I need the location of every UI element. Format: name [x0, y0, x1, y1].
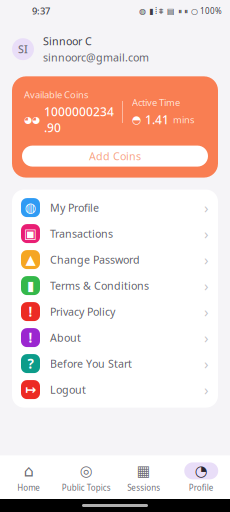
staticText: Transactions — [50, 226, 113, 241]
button[interactable]: ! — [12, 325, 218, 351]
staticText: › — [204, 328, 209, 347]
staticText: Sinnoor C — [43, 34, 92, 48]
staticText: Terms & Conditions — [50, 278, 149, 293]
button[interactable]: ◔ — [172, 462, 230, 493]
button[interactable]: ◎ — [57, 462, 115, 493]
button[interactable]: ↦ — [12, 377, 218, 403]
button[interactable]: ▣ — [12, 221, 218, 247]
staticText: Available Coins — [24, 88, 88, 101]
staticText: › — [204, 380, 209, 399]
staticText: My Profile — [50, 200, 99, 215]
staticText: › — [204, 198, 209, 217]
staticText: › — [204, 354, 209, 373]
staticText: 1000000234.90 — [44, 104, 114, 136]
button[interactable]: ▮ — [12, 273, 218, 299]
staticText: ◎ — [80, 463, 93, 479]
staticText: ⌂ — [24, 462, 34, 480]
staticText: ▦ — [137, 463, 151, 479]
staticText: Profile — [189, 482, 214, 493]
staticText: SI — [18, 42, 28, 56]
button[interactable]: ? — [12, 351, 218, 377]
button[interactable]: Add Coins — [22, 146, 208, 167]
staticText: Before You Start — [50, 356, 132, 371]
staticText: ▲ — [25, 252, 35, 267]
staticText: 1.41 — [145, 112, 169, 128]
staticText: Add Coins — [89, 149, 141, 163]
button[interactable]: ▦ — [115, 462, 172, 493]
staticText: ! — [28, 303, 32, 320]
staticText: Public Topics — [62, 482, 111, 493]
staticText: mins — [173, 113, 194, 126]
staticText: ▮ — [27, 278, 34, 293]
staticText: ▣ — [24, 226, 37, 241]
staticText: Sessions — [127, 482, 160, 493]
staticText: sinnoorc@gmail.com — [43, 50, 149, 64]
staticText: ◍ ▮ ⁞ ⩨ ▤ ⏸ ⏸ ○ 100% — [139, 6, 222, 16]
staticText: ? — [27, 355, 33, 372]
staticText: Change Password — [50, 252, 140, 267]
staticText: Active Time — [132, 96, 180, 109]
staticText: › — [204, 276, 209, 295]
staticText: › — [204, 250, 209, 269]
staticText: Privacy Policy — [50, 304, 115, 319]
staticText: 9:37 — [32, 5, 50, 17]
staticText: Logout — [50, 382, 86, 397]
staticText: ↦ — [25, 382, 36, 397]
staticText: ◔ — [195, 463, 208, 479]
button[interactable]: ◍ — [12, 195, 218, 221]
staticText: ◓ — [132, 114, 141, 126]
staticText: About — [50, 330, 81, 345]
button[interactable]: ▲ — [12, 247, 218, 273]
button[interactable]: ⌂ — [0, 462, 57, 493]
staticText: Home — [17, 482, 40, 493]
staticText: › — [204, 224, 209, 243]
staticText: ! — [28, 329, 32, 346]
staticText: › — [204, 302, 209, 321]
staticText: ◕◕ — [24, 114, 40, 125]
staticText: ◍ — [24, 200, 36, 215]
button[interactable]: ! — [12, 299, 218, 325]
